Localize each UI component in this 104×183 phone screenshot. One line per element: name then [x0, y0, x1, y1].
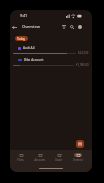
staticText: Plans [17, 158, 24, 162]
button[interactable]: Goals [49, 153, 68, 162]
staticText: Goals [55, 158, 62, 162]
button[interactable]: Plans [11, 153, 30, 162]
button[interactable]: Audi A4 [10, 44, 92, 56]
button[interactable]: Back [10, 23, 19, 32]
staticText: Accounts [34, 158, 46, 162]
staticText: €1,980.00 [76, 63, 89, 67]
button[interactable]: Profile [76, 23, 84, 31]
button[interactable]: Add transaction [76, 140, 84, 148]
staticText: Overview [22, 24, 40, 30]
button[interactable]: Today [15, 36, 28, 41]
staticText: Bike Account [24, 58, 44, 62]
staticText: Today [17, 37, 26, 41]
staticText: 9:41 [20, 13, 28, 18]
staticText: €24,500 [78, 51, 89, 55]
button[interactable]: Filter [60, 23, 68, 31]
button[interactable]: Accounts [30, 153, 49, 162]
button[interactable]: Search [68, 23, 76, 31]
staticText: Interest [73, 158, 83, 162]
button[interactable]: Bike Account [10, 56, 92, 68]
staticText: Audi A4 [23, 46, 35, 50]
button[interactable]: Interest [68, 153, 87, 162]
